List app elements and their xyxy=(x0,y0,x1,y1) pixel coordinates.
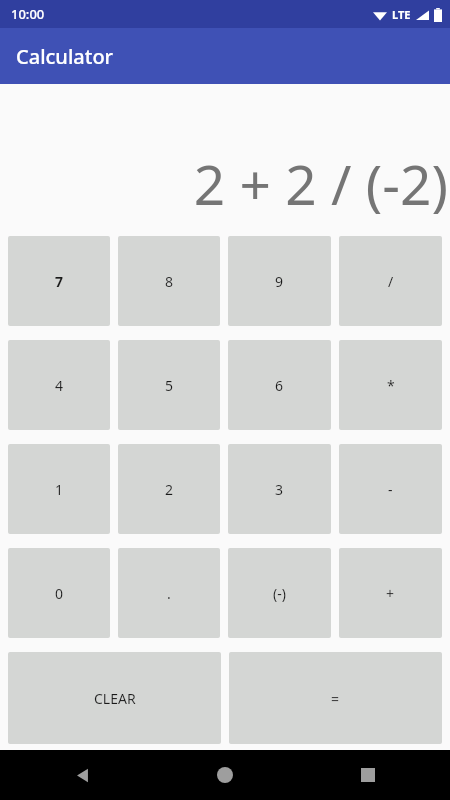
button[interactable]: (-) xyxy=(228,548,331,638)
staticText: 1 xyxy=(55,480,64,499)
button[interactable]: 9 xyxy=(228,236,331,326)
staticText: 8 xyxy=(165,272,174,291)
staticText: * xyxy=(387,376,395,395)
button[interactable]: 5 xyxy=(118,340,220,430)
button[interactable]: Recent apps xyxy=(346,753,390,797)
button[interactable]: 2 xyxy=(118,444,220,534)
staticText: / xyxy=(388,272,394,291)
staticText: (-) xyxy=(273,584,286,603)
staticText: 6 xyxy=(275,376,284,395)
staticText: 7 xyxy=(55,272,64,291)
staticText: CLEAR xyxy=(94,689,136,708)
button[interactable]: 6 xyxy=(228,340,331,430)
button[interactable]: = xyxy=(229,652,442,744)
button[interactable]: + xyxy=(339,548,442,638)
staticText: 2 + 2 / (-2) xyxy=(0,146,448,221)
button[interactable]: 3 xyxy=(228,444,331,534)
staticText: 0 xyxy=(55,584,64,603)
button[interactable]: * xyxy=(339,340,442,430)
button[interactable]: 0 xyxy=(8,548,110,638)
staticText: 2 xyxy=(165,480,174,499)
staticText: 4 xyxy=(55,376,64,395)
button[interactable]: - xyxy=(339,444,442,534)
button[interactable]: / xyxy=(339,236,442,326)
staticText: . xyxy=(167,584,171,603)
staticText: 9 xyxy=(275,272,284,291)
staticText: 10:00 xyxy=(11,5,45,23)
staticText: 3 xyxy=(275,480,284,499)
button[interactable]: Home xyxy=(203,753,247,797)
staticText: + xyxy=(386,584,395,603)
button[interactable]: Back xyxy=(60,753,104,797)
button[interactable]: 7 xyxy=(8,236,110,326)
button[interactable]: 1 xyxy=(8,444,110,534)
staticText: Calculator xyxy=(16,43,114,70)
staticText: - xyxy=(388,480,393,499)
staticText: 5 xyxy=(165,376,174,395)
staticText: LTE xyxy=(392,7,411,22)
button[interactable]: CLEAR xyxy=(8,652,221,744)
button[interactable]: 4 xyxy=(8,340,110,430)
staticText: = xyxy=(331,689,340,708)
button[interactable]: 8 xyxy=(118,236,220,326)
